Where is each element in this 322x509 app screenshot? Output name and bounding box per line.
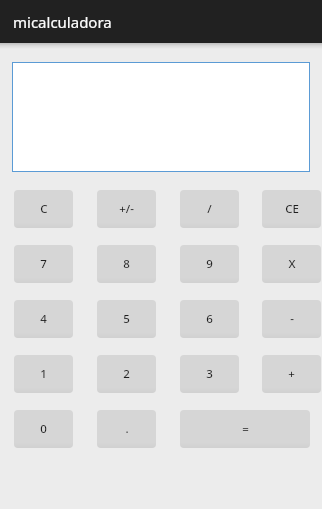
staticText: 7 [40,256,47,272]
button[interactable]: + [262,355,321,393]
staticText: 9 [206,256,213,272]
staticText: 5 [123,311,130,327]
staticText: 2 [123,366,130,382]
staticText: X [288,256,296,272]
staticText: / [207,201,212,217]
staticText: micalculadora [13,12,112,32]
staticText: 3 [206,366,213,382]
button[interactable]: - [262,300,321,338]
button[interactable]: 6 [180,300,239,338]
staticText: CE [285,201,299,217]
button[interactable]: 0 [14,410,73,448]
staticText: C [40,201,48,217]
staticText: 6 [206,311,213,327]
staticText: 1 [40,366,47,382]
button[interactable]: = [180,410,310,448]
staticText: 8 [123,256,130,272]
button[interactable]: 8 [97,245,156,283]
button[interactable]: +/- [97,190,156,228]
button[interactable]: X [262,245,321,283]
button[interactable]: 4 [14,300,73,338]
staticText: +/- [119,201,134,217]
staticText: - [290,311,294,327]
button[interactable] [12,62,310,172]
button[interactable]: 3 [180,355,239,393]
staticText: + [288,366,295,382]
staticText: . [125,421,129,437]
button[interactable]: 9 [180,245,239,283]
staticText: 4 [40,311,47,327]
button[interactable]: 7 [14,245,73,283]
button[interactable]: 5 [97,300,156,338]
staticText: 0 [40,421,47,437]
button[interactable]: 1 [14,355,73,393]
button[interactable]: / [180,190,239,228]
button[interactable]: CE [262,190,321,228]
button[interactable]: C [14,190,73,228]
button[interactable]: . [97,410,156,448]
button[interactable]: 2 [97,355,156,393]
staticText: = [242,421,249,437]
